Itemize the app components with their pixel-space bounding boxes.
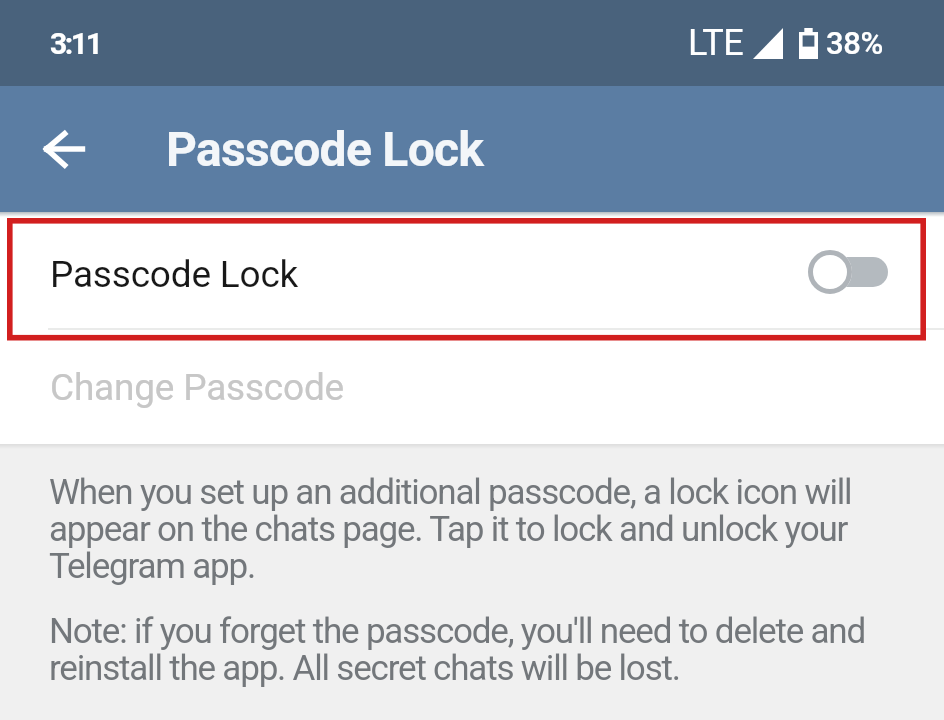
staticText: Change Passcode — [50, 366, 345, 409]
staticText: 38% — [826, 25, 883, 61]
button[interactable]: Passcode Lock — [0, 212, 944, 328]
staticText: 3:11 — [50, 26, 101, 61]
button[interactable]: Passcode Lock toggle, off — [808, 248, 888, 296]
staticText: Passcode Lock — [166, 121, 484, 177]
staticText: When you set up an additional passcode, … — [49, 472, 904, 587]
staticText: Passcode Lock — [50, 253, 299, 296]
button[interactable]: Change Passcode — [0, 330, 944, 444]
staticText: LTE — [688, 22, 744, 64]
button[interactable]: Back — [27, 109, 107, 189]
staticText: Note: if you forget the passcode, you'll… — [49, 611, 904, 689]
